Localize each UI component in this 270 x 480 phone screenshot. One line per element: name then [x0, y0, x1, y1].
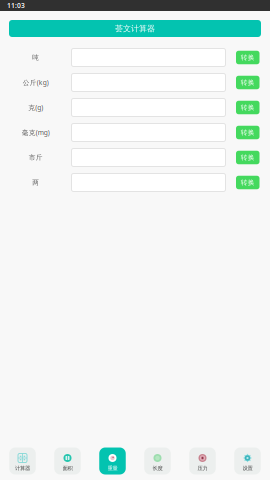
staticText: 转换	[241, 78, 255, 87]
button[interactable]: 重量	[90, 447, 135, 480]
button[interactable]: 转换	[225, 120, 270, 145]
staticText: 设置	[242, 465, 252, 472]
staticText: 计算器	[15, 465, 30, 472]
staticText: 毫克(mg)	[22, 128, 50, 137]
staticText: 两	[32, 178, 39, 187]
staticText: 公斤(kg)	[23, 78, 49, 87]
button[interactable]: 计算器	[0, 447, 45, 480]
button[interactable]: 长度	[135, 447, 180, 480]
button[interactable]: 压力	[180, 447, 225, 480]
staticText: 市斤	[29, 153, 43, 162]
staticText: 荟文计算器	[115, 24, 155, 33]
button[interactable]: 设置	[225, 447, 270, 480]
button[interactable]: 转换	[225, 45, 270, 70]
staticText: 转换	[241, 128, 255, 137]
button[interactable]: 转换	[225, 70, 270, 95]
button[interactable]: 转换	[225, 145, 270, 170]
staticText: 吨	[32, 53, 39, 62]
staticText: 转换	[241, 153, 255, 162]
staticText: 克(g)	[28, 103, 43, 112]
staticText: 转换	[241, 103, 255, 112]
staticText: 转换	[241, 178, 255, 187]
staticText: 长度	[152, 465, 162, 472]
staticText: 重量	[107, 465, 117, 472]
staticText: 11:03	[7, 1, 25, 10]
button[interactable]: 转换	[225, 170, 270, 195]
staticText: 压力	[197, 465, 207, 472]
staticText: 面积	[62, 465, 72, 472]
button[interactable]: 转换	[225, 95, 270, 120]
staticText: 转换	[241, 53, 255, 62]
button[interactable]: 面积	[45, 447, 90, 480]
